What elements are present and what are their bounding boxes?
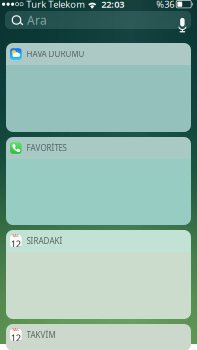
button[interactable]: Ara — [5, 11, 191, 29]
button[interactable]: SAL — [6, 324, 191, 346]
staticText: 12 — [11, 332, 21, 344]
staticText: Turk Telekom — [26, 0, 85, 10]
staticText: %36 — [156, 0, 174, 10]
staticText: TAKVİM — [27, 330, 56, 340]
staticText: SAL — [12, 233, 19, 238]
staticText: Ara — [27, 12, 47, 28]
button[interactable]: FAVORİTES — [6, 137, 191, 159]
staticText: SAL — [12, 327, 19, 332]
staticText: 12 — [11, 238, 21, 250]
staticText: HAVA DURUMU — [27, 49, 85, 59]
staticText: 22:03 — [101, 0, 124, 10]
button[interactable]: SAL — [6, 230, 191, 252]
staticText: SIRADAKİ — [27, 236, 63, 246]
staticText: FAVORİTES — [27, 143, 67, 153]
button[interactable]: HAVA DURUMU — [6, 43, 191, 65]
